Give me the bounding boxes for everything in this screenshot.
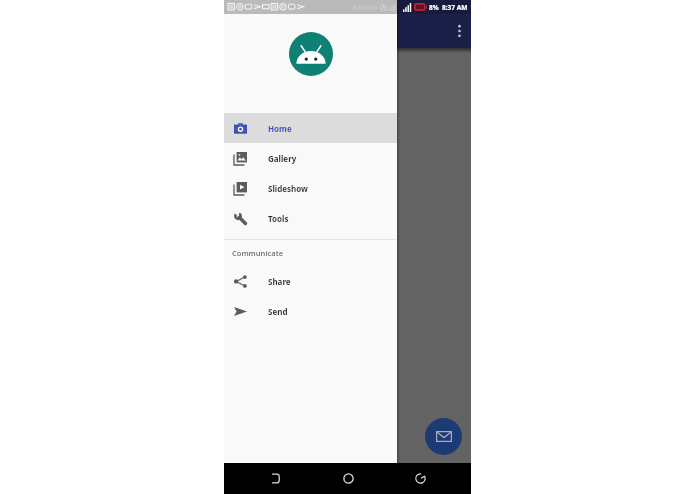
staticText: Home xyxy=(268,123,292,134)
staticText: Slideshow xyxy=(268,183,308,194)
staticText: Send xyxy=(268,306,288,317)
staticText: Gallery xyxy=(268,153,297,164)
button[interactable]: Compose email xyxy=(425,418,462,455)
staticText: Share xyxy=(268,276,291,287)
staticText: Tools xyxy=(268,213,289,224)
button[interactable]: Slideshow xyxy=(224,173,397,203)
button[interactable]: Home xyxy=(312,463,384,494)
button[interactable]: Home xyxy=(224,113,397,143)
button[interactable]: Tools xyxy=(224,203,397,233)
button[interactable]: More options xyxy=(445,14,471,48)
button[interactable]: Recent apps xyxy=(384,463,456,494)
button[interactable]: Share xyxy=(224,266,397,296)
button[interactable]: Gallery xyxy=(224,143,397,173)
button[interactable]: Send xyxy=(224,296,397,326)
staticText: Communicate xyxy=(232,248,284,258)
button[interactable]: Back xyxy=(239,463,312,494)
staticText: 8:37 AM xyxy=(442,3,468,12)
staticText: 8% xyxy=(429,3,439,12)
